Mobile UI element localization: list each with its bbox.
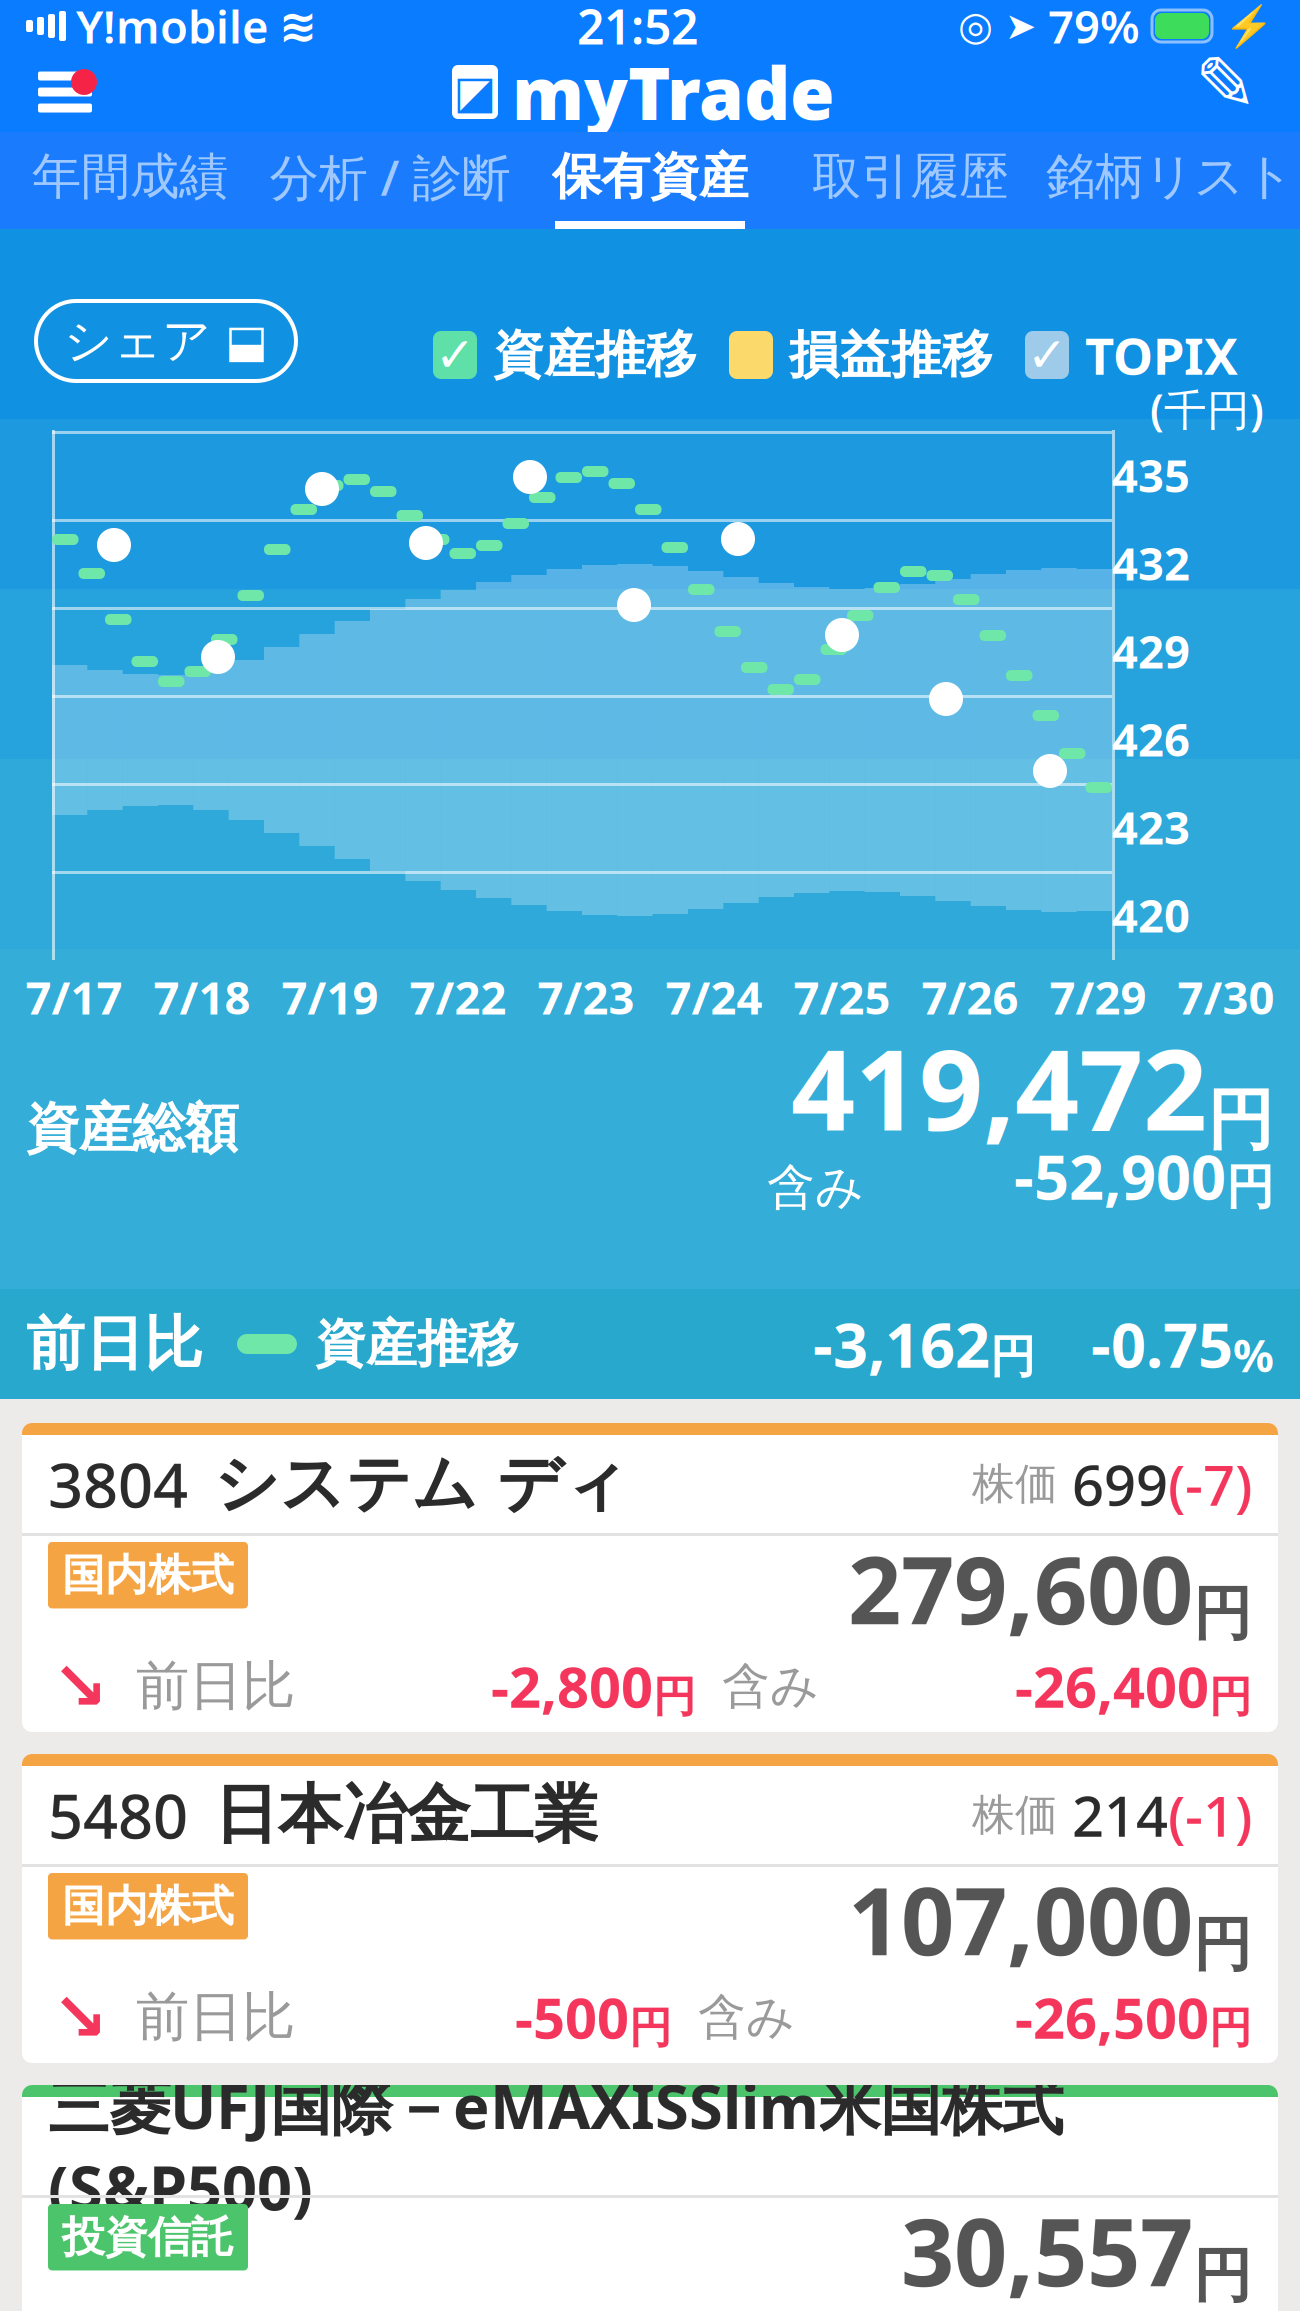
staticText: 7/29: [1049, 967, 1146, 1027]
button[interactable]: Menu: [20, 52, 110, 132]
staticText: 5480: [48, 1774, 188, 1856]
staticText: (-7): [1168, 1447, 1252, 1521]
staticText: 三菱UFJ国際－eMAXISSlim米国株式(S&P500): [48, 2065, 1063, 2227]
staticText: -26,400: [1015, 1649, 1209, 1723]
staticText: 7/23: [537, 967, 634, 1027]
staticText: 含み: [698, 1987, 795, 2046]
staticText: 取引履歴: [812, 146, 1008, 207]
staticText: ✎: [1194, 42, 1257, 126]
staticText: ≋: [279, 0, 317, 52]
staticText: 7/25: [793, 967, 890, 1027]
staticText: 国内株式: [62, 1880, 234, 1932]
staticText: -0.75: [1091, 1303, 1233, 1385]
staticText: シェア: [64, 311, 211, 370]
staticText: 30,557: [901, 2188, 1193, 2311]
staticText: 国内株式: [62, 1549, 234, 1601]
staticText: システム ディ: [214, 1445, 629, 1523]
staticText: 投資信託: [62, 2211, 234, 2263]
button[interactable]: 銘柄リスト: [1040, 132, 1300, 229]
staticText: 株価: [972, 1789, 1058, 1841]
staticText: ⚡: [1224, 3, 1274, 49]
staticText: ↘: [52, 1648, 108, 1724]
staticText: 年間成績: [32, 146, 228, 207]
staticText: -26,500: [1015, 1980, 1209, 2054]
staticText: 432: [1112, 533, 1190, 593]
staticText: 3804: [48, 1443, 188, 1525]
staticText: 7/24: [665, 967, 762, 1027]
staticText: ⬓: [225, 315, 268, 367]
staticText: 円: [990, 1329, 1035, 1385]
staticText: 含み: [767, 1158, 864, 1217]
staticText: myTrade: [512, 44, 834, 140]
staticText: 前日比: [136, 1984, 295, 2050]
staticText: (千円): [1150, 381, 1264, 437]
staticText: -52,900: [1014, 1135, 1226, 1217]
staticText: 円: [1193, 1909, 1252, 1981]
staticText: 419,472: [791, 1013, 1207, 1161]
staticText: %: [1233, 1324, 1274, 1385]
staticText: 7/19: [281, 967, 378, 1027]
staticText: 前日比: [136, 1653, 295, 1719]
staticText: 21:52: [577, 0, 698, 58]
staticText: 214: [1072, 1778, 1168, 1852]
button[interactable]: 取引履歴: [780, 132, 1040, 229]
staticText: 前日比: [26, 1308, 203, 1380]
staticText: 423: [1112, 797, 1190, 857]
staticText: 円: [1207, 1079, 1274, 1161]
staticText: -3,162: [813, 1303, 990, 1385]
staticText: 円: [1193, 2240, 1252, 2311]
staticText: 資産推移: [493, 324, 697, 386]
staticText: 7/30: [1177, 967, 1274, 1027]
staticText: 資産総額: [26, 1096, 238, 1161]
staticText: 7/22: [409, 967, 506, 1027]
staticText: 分析 / 診断: [269, 144, 510, 209]
staticText: 79%: [1048, 0, 1140, 56]
staticText: ➤: [1005, 5, 1036, 47]
staticText: 420: [1112, 885, 1190, 945]
staticText: 円: [1193, 1578, 1252, 1650]
staticText: 7/17: [25, 967, 122, 1027]
button[interactable]: ✓: [1009, 320, 1254, 390]
staticText: 含み: [722, 1656, 819, 1715]
staticText: 435: [1112, 445, 1190, 505]
staticText: TOPIX: [1085, 321, 1238, 389]
button[interactable]: [713, 320, 1009, 390]
staticText: -2,800: [491, 1649, 653, 1723]
staticText: 279,600: [848, 1526, 1193, 1650]
button[interactable]: 三菱UFJ国際－eMAXISSlim米国株式(S&P500): [22, 2085, 1278, 2311]
staticText: ✓: [435, 328, 475, 382]
button[interactable]: Edit: [1176, 52, 1276, 132]
staticText: ✓: [1027, 328, 1067, 382]
staticText: 7/26: [921, 967, 1018, 1027]
staticText: 損益推移: [789, 324, 993, 386]
staticText: 資産推移: [315, 1313, 519, 1375]
staticText: 円: [629, 2002, 672, 2054]
staticText: Y!mobile: [76, 0, 269, 56]
staticText: 円: [653, 1671, 696, 1723]
button[interactable]: シェア: [36, 301, 296, 381]
staticText: 株価: [972, 1458, 1058, 1510]
staticText: ◪: [453, 66, 496, 118]
button[interactable]: 年間成績: [0, 132, 260, 229]
staticText: 保有資産: [552, 146, 748, 207]
staticText: 円: [1226, 1158, 1274, 1217]
staticText: 429: [1112, 621, 1190, 681]
button[interactable]: 5480: [22, 1754, 1278, 2063]
button[interactable]: 保有資産: [520, 132, 780, 229]
staticText: 107,000: [848, 1857, 1193, 1981]
staticText: ↘: [52, 1979, 108, 2055]
staticText: ◎: [958, 3, 993, 49]
staticText: 7/18: [153, 967, 250, 1027]
staticText: 699: [1072, 1447, 1168, 1521]
button[interactable]: 分析 / 診断: [260, 132, 520, 229]
staticText: 426: [1112, 709, 1190, 769]
button[interactable]: 3804: [22, 1423, 1278, 1732]
staticText: 円: [1209, 2002, 1252, 2054]
staticText: -500: [515, 1980, 629, 2054]
staticText: 日本冶金工業: [214, 1776, 598, 1854]
staticText: 円: [1209, 1671, 1252, 1723]
button[interactable]: ✓: [417, 320, 713, 390]
staticText: (-1): [1168, 1778, 1252, 1852]
staticText: 銘柄リスト: [1046, 146, 1294, 207]
